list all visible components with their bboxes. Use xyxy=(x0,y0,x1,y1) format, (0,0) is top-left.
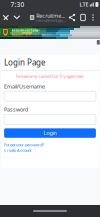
staticText: Password xyxy=(4,106,28,113)
button[interactable]: More options xyxy=(88,9,98,26)
button[interactable]: Recruitment ... xyxy=(30,9,66,26)
staticText: Email/Username xyxy=(4,83,45,90)
button[interactable]: Login xyxy=(4,128,96,138)
staticText: Recruitment ... xyxy=(36,12,66,19)
button[interactable]: Create Account xyxy=(4,147,31,153)
staticText: Recruitment Portal xyxy=(12,29,40,32)
staticText: Apply for advertised vacancies xyxy=(12,33,52,36)
button[interactable]: Page info xyxy=(13,9,21,26)
staticText: Login xyxy=(43,129,56,137)
staticText: 7:30 xyxy=(11,0,25,9)
staticText: LTE xyxy=(79,1,88,8)
button[interactable]: Forgot your password? xyxy=(4,142,44,147)
button[interactable]: Close xyxy=(0,9,13,26)
button[interactable]: Share xyxy=(66,9,78,26)
staticText: recruitment.go.ke xyxy=(36,18,66,23)
button[interactable]: Tabs xyxy=(78,9,88,26)
staticText: Temporarily Locked Out. Try again later xyxy=(15,73,84,79)
staticText: Forgot your password? xyxy=(4,142,44,147)
staticText: Create Account xyxy=(4,147,31,153)
staticText: Login Page xyxy=(4,57,46,68)
